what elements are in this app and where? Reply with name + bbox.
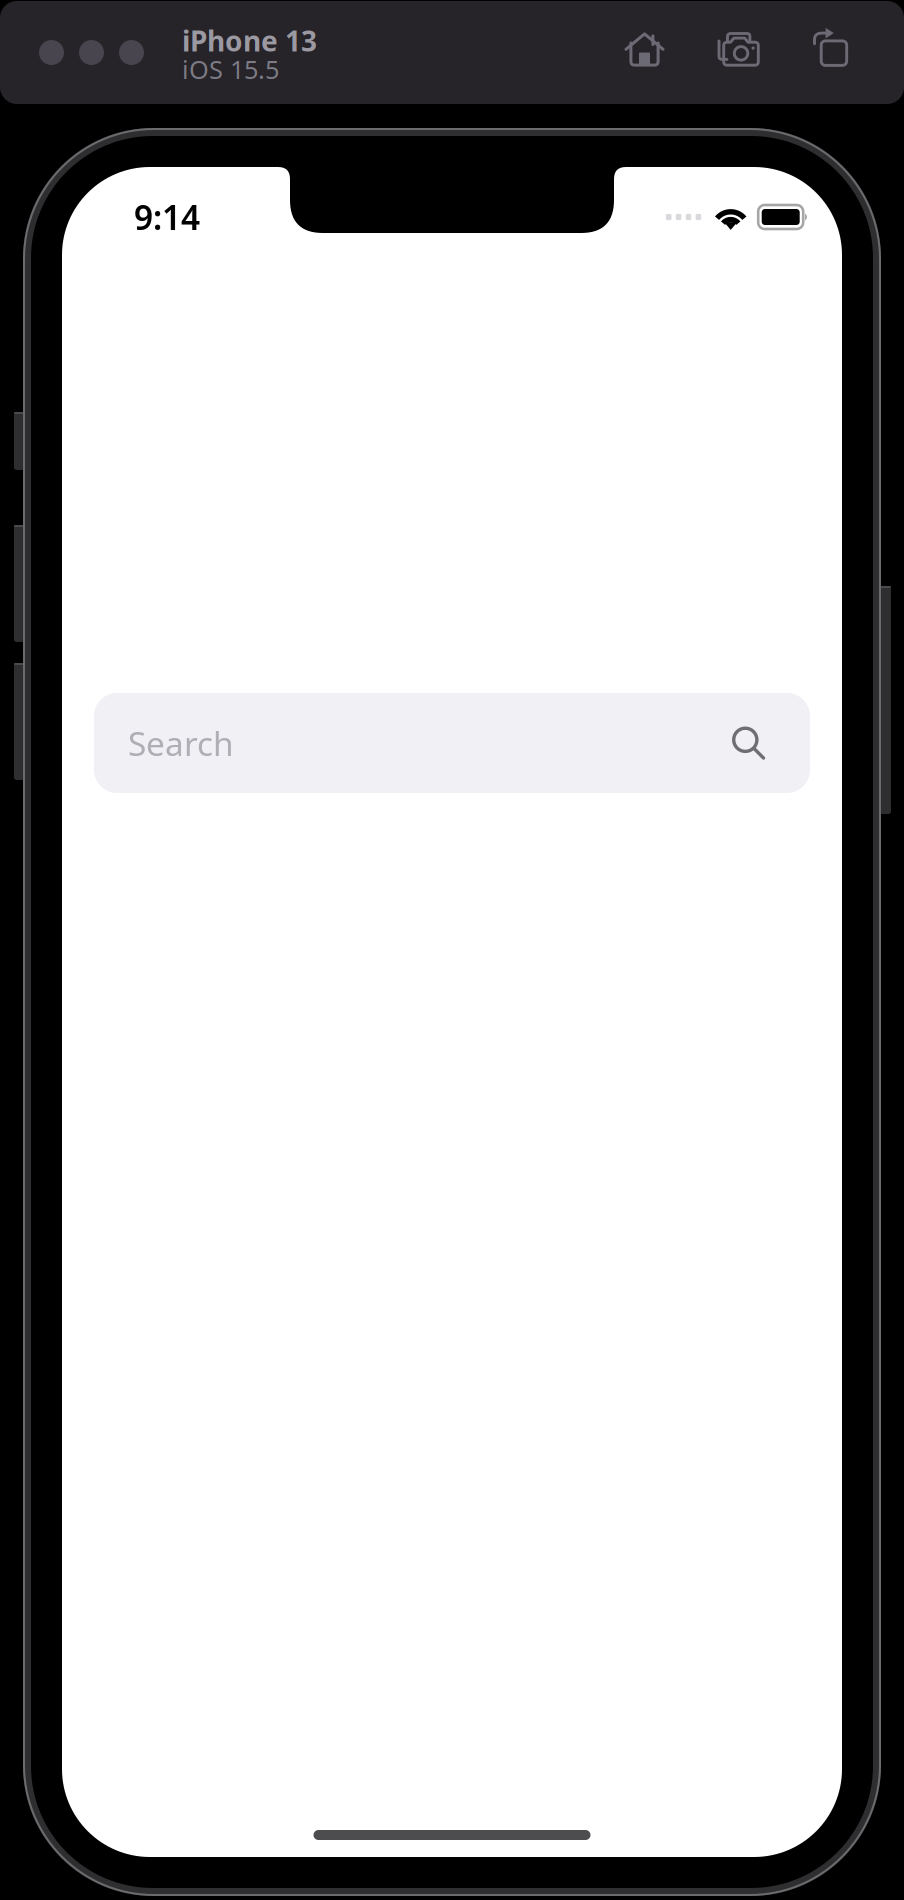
button[interactable]: Screenshot <box>693 16 785 82</box>
staticText: Search <box>128 721 234 765</box>
button[interactable]: Record screen <box>785 16 875 82</box>
staticText: 9:14 <box>134 195 200 239</box>
staticText: iPhone 13 <box>182 22 317 59</box>
staticText: iOS 15.5 <box>182 52 279 86</box>
button[interactable]: Home <box>596 16 693 82</box>
button[interactable]: Search <box>94 693 810 793</box>
